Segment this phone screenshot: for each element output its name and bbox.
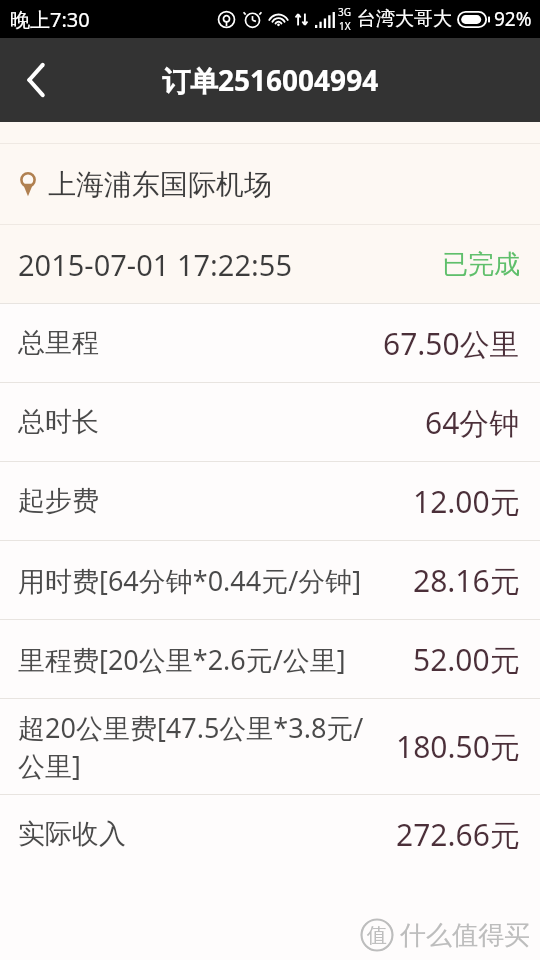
staticText: 67.50公里 [383, 323, 520, 364]
staticText: 52.00元 [413, 639, 520, 680]
button[interactable]: 2015-07-01 17:22:55 [0, 225, 540, 303]
button[interactable]: Back [0, 38, 72, 122]
button[interactable]: 用时费[64分钟*0.44元/分钟] [0, 541, 540, 619]
staticText: 3G [338, 5, 351, 19]
button[interactable]: 上海浦东国际机场 [0, 144, 540, 224]
staticText: 值 [367, 923, 387, 948]
staticText: 实际收入 [18, 817, 126, 851]
staticText: 64分钟 [425, 402, 520, 443]
staticText: 12.00元 [413, 481, 520, 522]
staticText: 什么值得买 [400, 919, 530, 952]
staticText: 总里程 [18, 326, 99, 360]
button[interactable]: 超20公里费[47.5公里*3.8元/公里] [0, 699, 540, 794]
button[interactable]: 里程费[20公里*2.6元/公里] [0, 620, 540, 698]
staticText: 台湾大哥大 [357, 7, 452, 31]
button[interactable]: 实际收入 [0, 795, 540, 873]
button[interactable]: 总里程 [0, 304, 540, 382]
staticText: 2015-07-01 17:22:55 [18, 245, 292, 284]
staticText: 上海浦东国际机场 [48, 167, 272, 202]
staticText: 已完成 [442, 248, 520, 281]
staticText: 总时长 [18, 405, 99, 439]
staticText: 起步费 [18, 484, 99, 518]
staticText: 180.50元 [396, 726, 520, 767]
staticText: 用时费[64分钟*0.44元/分钟] [18, 562, 362, 599]
staticText: 里程费[20公里*2.6元/公里] [18, 641, 346, 678]
button[interactable]: 起步费 [0, 462, 540, 540]
staticText: 28.16元 [413, 560, 520, 601]
staticText: 92% [494, 6, 532, 32]
staticText: 订单2516004994 [162, 61, 379, 99]
staticText: 272.66元 [396, 814, 520, 855]
staticText: 晚上7:30 [10, 6, 90, 33]
button[interactable]: 总时长 [0, 383, 540, 461]
staticText: 超20公里费[47.5公里*3.8元/公里] [18, 709, 388, 784]
staticText: 1X [339, 19, 351, 33]
